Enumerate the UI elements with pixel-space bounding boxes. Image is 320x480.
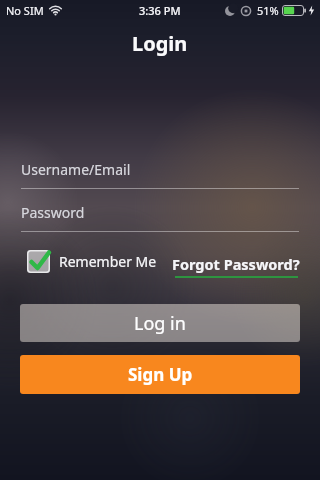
button[interactable]: Remember Me	[27, 250, 157, 273]
staticText: No SIM	[6, 3, 44, 18]
button[interactable]: Forgot Password?	[172, 254, 300, 278]
staticText: 51%	[257, 3, 279, 18]
button[interactable]: Log in	[20, 304, 300, 342]
staticText: Remember Me	[59, 252, 157, 271]
button[interactable]: Sign Up	[20, 355, 300, 394]
staticText: Username/Email	[21, 160, 131, 179]
staticText: 3:36 PM	[139, 3, 181, 18]
staticText: Password	[21, 203, 85, 222]
staticText: Forgot Password?	[172, 254, 300, 274]
button[interactable]: Username/Email	[21, 160, 299, 189]
staticText: Login	[132, 30, 188, 57]
staticText: Log in	[134, 311, 186, 336]
staticText: Sign Up	[128, 363, 193, 386]
button[interactable]: Password	[21, 203, 299, 232]
